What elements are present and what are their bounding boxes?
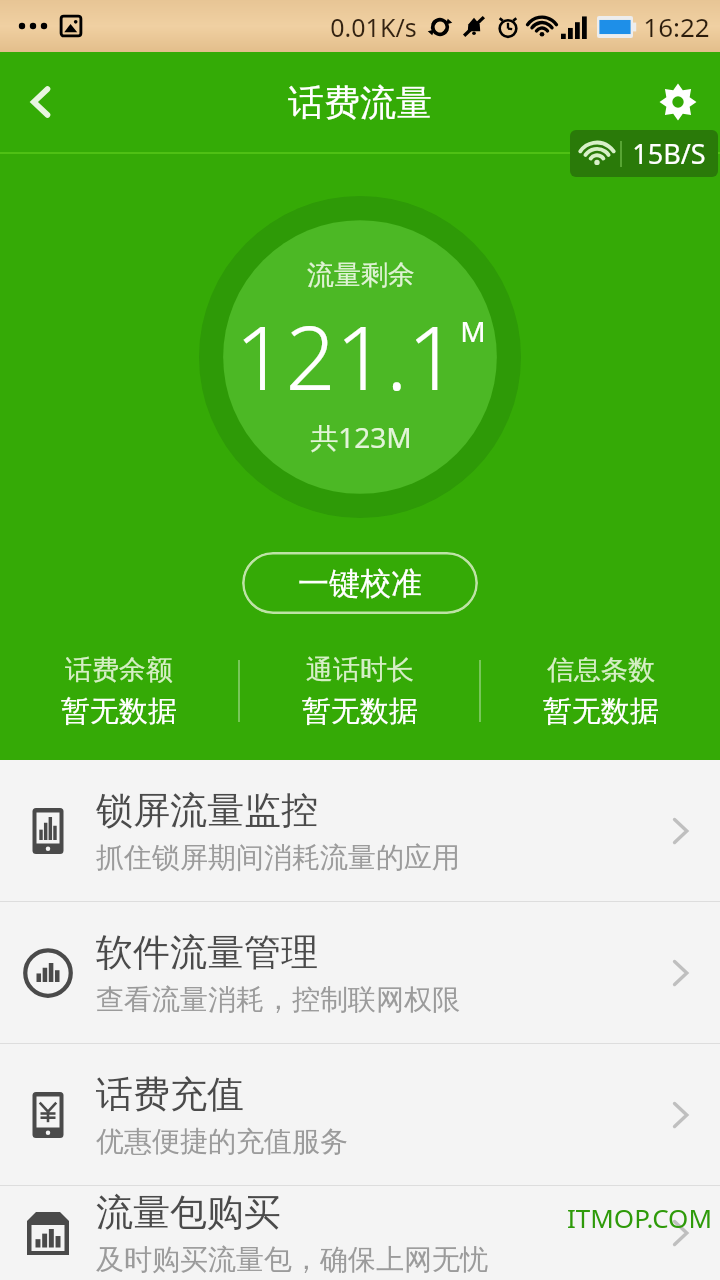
button[interactable]: 信息条数 — [481, 646, 720, 736]
staticText: 锁屏流量监控 — [96, 787, 318, 834]
staticText: 通话时长 — [306, 653, 414, 687]
button[interactable]: Settings — [636, 60, 720, 144]
staticText: 121.1 — [235, 296, 458, 416]
staticText: M — [460, 312, 486, 350]
button[interactable]: 软件流量管理 — [0, 902, 720, 1043]
staticText: 流量包购买 — [96, 1189, 281, 1236]
button[interactable]: Network speed — [582, 135, 706, 172]
staticText: 暂无数据 — [543, 693, 659, 730]
staticText: 暂无数据 — [302, 693, 418, 730]
button[interactable]: Back — [0, 60, 84, 144]
staticText: 优惠便捷的充值服务 — [96, 1124, 348, 1159]
staticText: 流量剩余 — [307, 258, 415, 292]
staticText: 软件流量管理 — [96, 929, 318, 976]
staticText: 信息条数 — [547, 653, 655, 687]
button[interactable]: 锁屏流量监控 — [0, 760, 720, 901]
staticText: 0.01K/s — [330, 10, 417, 44]
staticText: 及时购买流量包，确保上网无忧 — [96, 1242, 488, 1277]
button[interactable]: 流量包购买 — [0, 1186, 720, 1280]
staticText: 话费余额 — [65, 653, 173, 687]
staticText: 话费充值 — [96, 1071, 244, 1118]
staticText: 话费流量 — [288, 80, 432, 125]
button[interactable]: 话费充值 — [0, 1044, 720, 1185]
staticText: 暂无数据 — [61, 693, 177, 730]
staticText: 15B/S — [632, 135, 706, 172]
staticText: ITMOP.COM — [567, 1200, 712, 1235]
staticText: 抓住锁屏期间消耗流量的应用 — [96, 840, 460, 875]
button[interactable]: 一键校准 — [242, 552, 478, 614]
staticText: 共123M — [310, 418, 412, 456]
staticText: 一键校准 — [298, 564, 422, 603]
button[interactable]: 通话时长 — [240, 646, 479, 736]
staticText: 16:22 — [643, 9, 710, 44]
staticText: 查看流量消耗，控制联网权限 — [96, 982, 460, 1017]
button[interactable]: 话费余额 — [0, 646, 238, 736]
